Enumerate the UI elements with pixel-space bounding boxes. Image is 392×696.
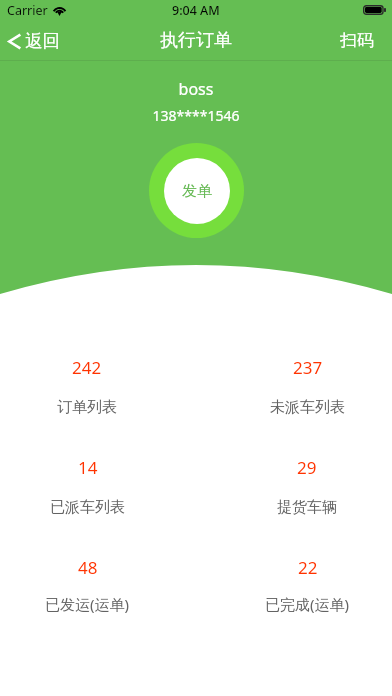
staticText: 22 [298, 556, 318, 579]
button[interactable]: 14 [40, 452, 135, 521]
other: Back [8, 33, 21, 50]
staticText: 242 [72, 356, 102, 379]
staticText: 已派车列表 [50, 498, 125, 517]
staticText: 订单列表 [57, 398, 117, 417]
staticText: boss [0, 78, 392, 100]
staticText: Carrier [7, 2, 48, 19]
staticText: 29 [297, 456, 317, 479]
staticText: 138****1546 [0, 106, 392, 125]
button[interactable]: 22 [255, 552, 360, 618]
button[interactable]: 237 [260, 352, 355, 421]
staticText: 扫码 [340, 30, 374, 51]
button[interactable]: 29 [267, 452, 347, 521]
other: Battery [363, 5, 386, 15]
staticText: 9:04 AM [172, 2, 220, 19]
staticText: 发单 [182, 182, 212, 201]
staticText: 已完成(运单) [265, 594, 350, 614]
staticText: 返回 [25, 30, 60, 52]
staticText: 14 [78, 456, 98, 479]
button[interactable]: 扫码 [326, 20, 392, 61]
button[interactable]: 发单 [149, 143, 244, 238]
staticText: 48 [78, 556, 98, 579]
staticText: 237 [293, 356, 323, 379]
button[interactable]: 48 [35, 552, 140, 618]
button[interactable]: 242 [47, 352, 127, 421]
staticText: 执行订单 [160, 29, 232, 52]
button[interactable]: Back [0, 25, 70, 57]
staticText: 已发运(运单) [45, 594, 130, 614]
staticText: 提货车辆 [277, 498, 337, 517]
staticText: 未派车列表 [270, 398, 345, 417]
